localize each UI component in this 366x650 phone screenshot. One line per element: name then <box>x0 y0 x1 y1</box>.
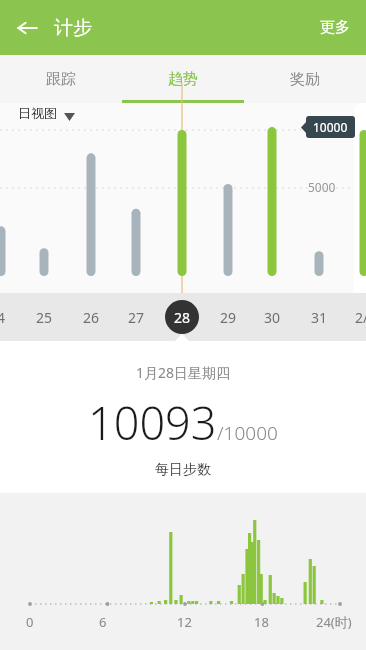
staticText: 18 <box>254 613 269 631</box>
button[interactable]: 趋势 <box>122 55 244 103</box>
staticText: 28 <box>174 308 191 327</box>
staticText: 29 <box>220 308 237 327</box>
staticText: 26 <box>83 308 100 327</box>
staticText: 更多 <box>320 18 350 37</box>
staticText: 奖励 <box>290 70 320 89</box>
staticText: 10093 <box>88 392 217 453</box>
staticText: 12 <box>177 613 192 631</box>
staticText: 计步 <box>54 16 92 40</box>
button[interactable]: 奖励 <box>244 55 366 103</box>
button[interactable]: 4 <box>0 293 17 341</box>
staticText: 30 <box>264 308 281 327</box>
button[interactable]: 28 <box>166 293 198 341</box>
staticText: 2/ <box>355 308 366 327</box>
button[interactable]: 31 <box>303 293 335 341</box>
staticText: 跟踪 <box>46 70 76 89</box>
staticText: 趋势 <box>168 70 198 89</box>
staticText: 31 <box>311 308 328 327</box>
button[interactable]: 27 <box>120 293 152 341</box>
staticText: 24(时) <box>316 613 352 631</box>
button[interactable]: 2/ <box>346 293 366 341</box>
button[interactable]: 跟踪 <box>0 55 122 103</box>
button[interactable]: 更多 <box>304 6 366 49</box>
staticText: 5000 <box>308 179 336 195</box>
staticText: 每日步数 <box>155 461 211 479</box>
button[interactable]: 30 <box>256 293 288 341</box>
staticText: 4 <box>0 308 6 327</box>
staticText: 0 <box>26 613 34 631</box>
staticText: 25 <box>36 308 53 327</box>
staticText: 1月28日星期四 <box>136 363 231 382</box>
staticText: 日视图 <box>18 105 57 121</box>
staticText: 6 <box>99 613 107 631</box>
button[interactable]: 29 <box>212 293 244 341</box>
button[interactable]: 25 <box>28 293 60 341</box>
staticText: /10000 <box>217 420 278 446</box>
button[interactable]: 26 <box>75 293 107 341</box>
button[interactable]: Back <box>6 7 48 49</box>
staticText: 10000 <box>313 119 348 135</box>
staticText: 27 <box>128 308 145 327</box>
